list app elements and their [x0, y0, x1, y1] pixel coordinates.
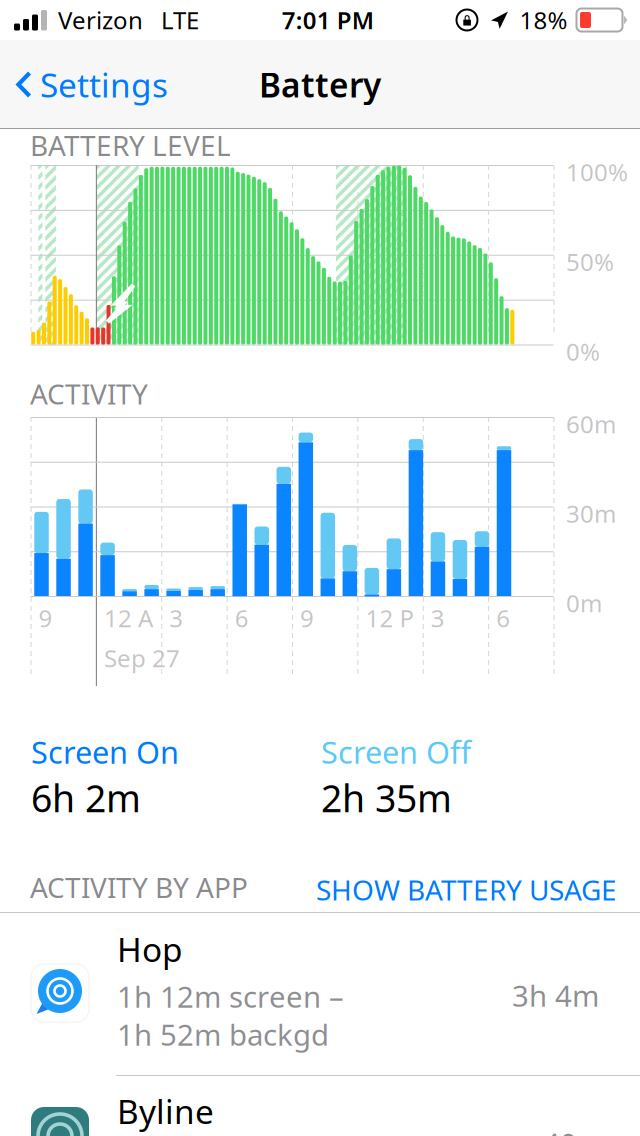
staticText: 7:01 PM: [282, 4, 374, 36]
staticText: 1h 12m screen –: [117, 977, 344, 1016]
button[interactable]: Screen On: [31, 731, 191, 763]
staticText: 12 A: [104, 602, 153, 634]
staticText: 60m: [566, 408, 616, 440]
staticText: 3: [169, 602, 183, 634]
staticText: 6: [496, 602, 510, 634]
button[interactable]: Screen Off: [321, 731, 491, 763]
staticText: 1h 52m backgd: [117, 1015, 329, 1054]
staticText: BATTERY LEVEL: [30, 126, 231, 164]
staticText: Settings: [40, 62, 168, 107]
staticText: 30m: [566, 497, 616, 529]
button[interactable]: Settings: [0, 54, 180, 114]
staticText: Screen Off: [321, 731, 471, 772]
staticText: Verizon: [58, 4, 143, 36]
staticText: 9: [38, 602, 52, 634]
staticText: 0m: [566, 587, 602, 619]
staticText: 6h 2m: [31, 773, 141, 823]
staticText: 100%: [566, 156, 628, 188]
staticText: Hop: [117, 927, 183, 971]
staticText: 18%: [519, 4, 567, 36]
staticText: ACTIVITY: [30, 375, 148, 412]
button[interactable]: Byline: [0, 1076, 640, 1136]
staticText: 3: [431, 602, 445, 634]
staticText: 12 P: [365, 602, 414, 634]
staticText: LTE: [161, 4, 199, 36]
button[interactable]: Hop: [0, 913, 640, 1075]
staticText: 2h 35m: [321, 773, 452, 823]
staticText: Battery: [259, 62, 381, 107]
staticText: 3h 4m: [512, 976, 599, 1015]
staticText: 50%: [566, 246, 614, 278]
staticText: 40m: [543, 1124, 604, 1136]
staticText: Byline: [117, 1089, 214, 1133]
staticText: 6: [235, 602, 249, 634]
staticText: SHOW BATTERY USAGE: [316, 871, 617, 908]
staticText: ACTIVITY BY APP: [30, 868, 248, 906]
staticText: 9: [300, 602, 314, 634]
staticText: Screen On: [31, 731, 179, 772]
staticText: Sep 27: [104, 642, 180, 674]
staticText: 0%: [566, 335, 600, 367]
button[interactable]: SHOW BATTERY USAGE: [312, 865, 621, 914]
